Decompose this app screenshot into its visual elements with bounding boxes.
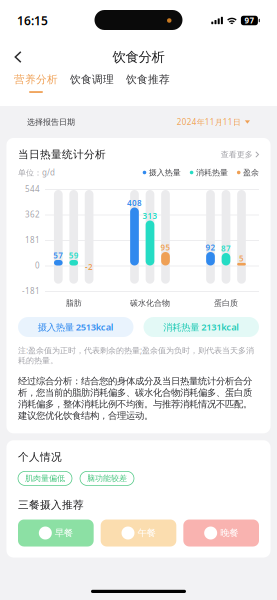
button[interactable]: Back xyxy=(5,45,31,69)
staticText: 午餐 xyxy=(137,527,155,539)
staticText: 92 xyxy=(205,242,215,253)
staticText: 晚餐 xyxy=(220,527,238,539)
staticText: 362 xyxy=(25,209,40,220)
staticText: 摄入热量 2513kcal xyxy=(38,321,114,333)
button[interactable]: 饮食推荐 xyxy=(126,73,170,93)
staticText: 57 xyxy=(53,250,63,261)
staticText: 查看更多 xyxy=(221,150,253,159)
staticText: 当日热量统计分析 xyxy=(18,148,106,161)
button[interactable]: 2024年11月11日 xyxy=(177,117,250,127)
staticText: 饮食调理 xyxy=(70,73,114,86)
button[interactable]: 饮食调理 xyxy=(70,73,114,93)
staticText: 脂肪 xyxy=(66,298,82,308)
staticText: 87 xyxy=(221,243,231,254)
staticText: 97 xyxy=(244,15,254,26)
staticText: -2 xyxy=(85,262,93,272)
staticText: -181 xyxy=(22,286,40,296)
button[interactable]: 午餐 xyxy=(101,519,176,546)
staticText: 95 xyxy=(160,242,170,253)
staticText: 蛋白质 xyxy=(214,298,238,308)
staticText: 选择报告日期 xyxy=(27,117,75,127)
staticText: 饮食分析 xyxy=(112,49,164,65)
button[interactable]: 晚餐 xyxy=(183,519,259,546)
staticText: 脑功能较差 xyxy=(87,473,127,483)
staticText: 饮食推荐 xyxy=(126,73,170,86)
staticText: 0 xyxy=(35,260,40,271)
staticText: 2024年11月11日 xyxy=(177,117,241,127)
staticText: 营养分析 xyxy=(14,73,58,86)
staticText: 肌肉量偏低 xyxy=(25,473,65,483)
staticText: 单位：g/d xyxy=(18,167,55,178)
staticText: 碳水化合物 xyxy=(130,298,170,308)
staticText: 摄入热量 xyxy=(149,168,181,177)
staticText: 5 xyxy=(239,253,244,264)
staticText: 181 xyxy=(25,235,40,245)
staticText: 16:15 xyxy=(17,12,48,28)
staticText: 早餐 xyxy=(55,527,73,539)
staticText: 59 xyxy=(69,250,79,261)
staticText: 经过综合分析：结合您的身体成分及当日热量统计分析合分析，您当前的脂肪消耗偏多、碳… xyxy=(18,375,252,421)
staticText: 三餐摄入推荐 xyxy=(18,498,84,511)
staticText: 消耗热量 xyxy=(196,168,228,177)
staticText: 313 xyxy=(142,211,157,221)
button[interactable]: 早餐 xyxy=(18,519,94,546)
staticText: 544 xyxy=(25,184,40,194)
staticText: 消耗热量 2131kcal xyxy=(163,321,239,333)
staticText: 注:盈余值为正时，代表剩余的热量;盈余值为负时，则代表当天多消耗的热量。 xyxy=(18,345,254,365)
button[interactable]: 查看更多 xyxy=(221,150,259,159)
button[interactable]: 营养分析 xyxy=(14,73,58,93)
staticText: 盈余 xyxy=(243,168,259,177)
staticText: 408 xyxy=(127,198,142,208)
staticText: 个人情况 xyxy=(18,450,62,463)
